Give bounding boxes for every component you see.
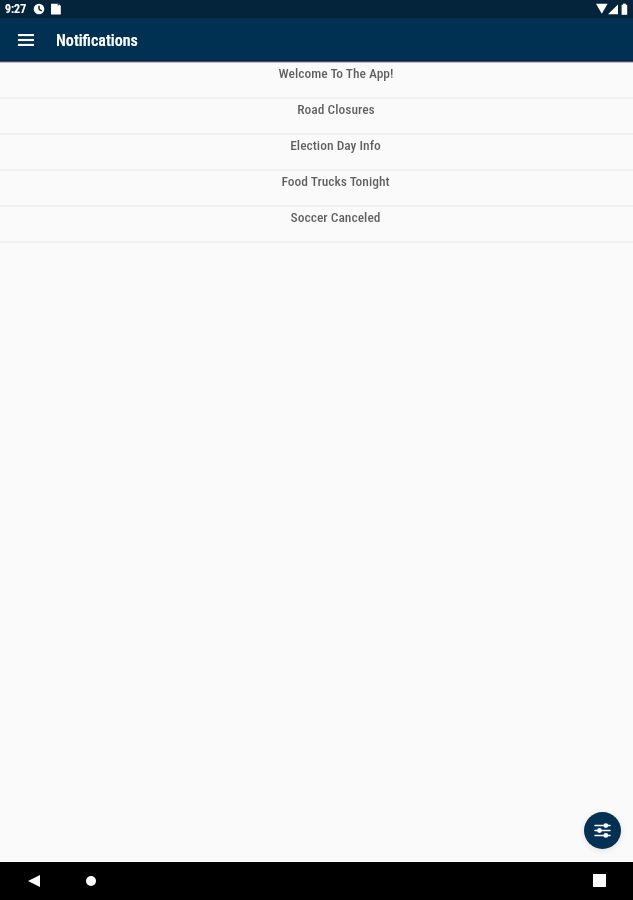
button[interactable]: Recent apps [587,868,612,893]
button[interactable]: Soccer Canceled [0,207,633,243]
button[interactable]: Filter notifications [584,812,621,849]
staticText: Soccer Canceled [290,209,381,225]
button[interactable]: Road Closures [0,99,633,135]
button[interactable]: Food Trucks Tonight [0,171,633,207]
staticText: Road Closures [297,101,375,117]
staticText: Welcome To The App! [278,65,394,81]
staticText: Food Trucks Tonight [281,173,390,189]
staticText: Election Day Info [290,137,381,153]
button[interactable]: Open navigation menu [12,26,39,53]
button[interactable]: Welcome To The App! [0,63,633,99]
button[interactable]: Back [21,868,46,893]
staticText: 9:27 [5,2,27,16]
button[interactable]: Election Day Info [0,135,633,171]
staticText: Notifications [56,31,138,50]
button[interactable]: Home [78,868,103,893]
